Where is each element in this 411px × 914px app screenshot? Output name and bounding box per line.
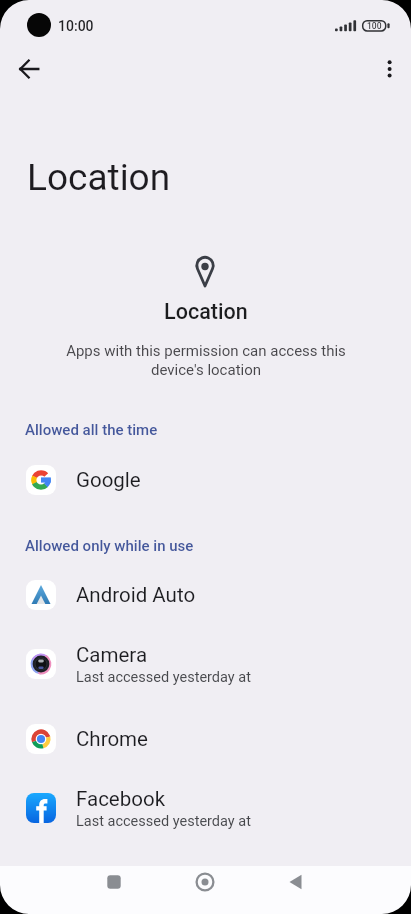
button[interactable]: Chrome bbox=[0, 708, 411, 770]
staticText: Facebook bbox=[76, 787, 166, 811]
staticText: Location bbox=[164, 299, 248, 324]
staticText: Location bbox=[27, 156, 171, 199]
button[interactable] bbox=[366, 47, 410, 91]
button[interactable] bbox=[92, 860, 136, 904]
staticText: Last accessed yesterday at bbox=[76, 669, 251, 686]
button[interactable]: Facebook bbox=[0, 777, 411, 839]
staticText: 10:00 bbox=[58, 18, 94, 34]
button[interactable] bbox=[274, 860, 318, 904]
staticText: Chrome bbox=[76, 727, 148, 751]
button[interactable]: Android Auto bbox=[0, 564, 411, 626]
staticText: 100 bbox=[367, 21, 382, 31]
staticText: Google bbox=[76, 468, 141, 492]
staticText: Apps with this permission can access thi… bbox=[66, 342, 346, 378]
staticText: Allowed all the time bbox=[25, 421, 158, 439]
staticText: Last accessed yesterday at bbox=[76, 813, 251, 830]
button[interactable] bbox=[7, 47, 51, 91]
staticText: Android Auto bbox=[76, 583, 196, 607]
staticText: Camera bbox=[76, 643, 148, 667]
staticText: Allowed only while in use bbox=[25, 537, 194, 555]
button[interactable]: Google bbox=[0, 449, 411, 511]
button[interactable]: Camera bbox=[0, 633, 411, 695]
button[interactable] bbox=[183, 860, 227, 904]
